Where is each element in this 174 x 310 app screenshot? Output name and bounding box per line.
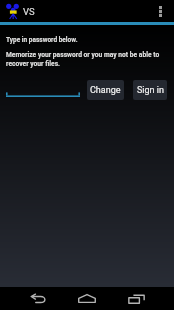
button[interactable]: More options: [150, 1, 170, 22]
staticText: Memorize your password or you may not be…: [6, 51, 166, 67]
staticText: Type in password below.: [6, 36, 78, 44]
button[interactable]: [6, 80, 80, 97]
button[interactable]: Change: [87, 80, 124, 100]
staticText: Sign in: [137, 85, 164, 96]
button[interactable]: Home: [67, 287, 107, 310]
staticText: VS: [23, 6, 35, 17]
button[interactable]: Back: [18, 287, 58, 310]
button[interactable]: Recent apps: [116, 287, 156, 310]
staticText: Change: [90, 85, 121, 96]
button[interactable]: Sign in: [133, 80, 167, 100]
